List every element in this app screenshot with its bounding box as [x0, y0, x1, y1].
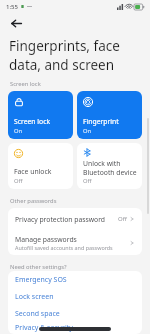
staticText: Off: [14, 177, 23, 185]
button[interactable]: Fingerprint unlock: [77, 91, 142, 139]
button[interactable]: Face unlock: [8, 143, 73, 189]
staticText: Unlock with: [83, 159, 121, 168]
staticText: 1:55: [6, 3, 18, 11]
staticText: On: [14, 127, 23, 135]
staticText: Manage passwords: [15, 235, 77, 244]
staticText: data, and screen lock: [9, 56, 134, 74]
button[interactable]: Privacy & security: [8, 322, 142, 334]
staticText: Off: [83, 177, 92, 185]
other: Open: [129, 240, 135, 246]
button[interactable]: Back: [6, 13, 26, 33]
staticText: Need other settings?: [10, 263, 67, 271]
staticText: Screen lock: [10, 80, 41, 88]
button[interactable]: Unlock with: [77, 143, 142, 189]
staticText: Second space: [15, 309, 60, 319]
staticText: Autofill saved accounts and passwords: [15, 244, 113, 251]
button[interactable]: Manage passwords: [8, 230, 142, 255]
staticText: Privacy protection password: [15, 215, 106, 224]
staticText: On: [83, 127, 92, 135]
button[interactable]: Emergency SOS: [8, 271, 142, 288]
other: Open: [129, 216, 135, 222]
staticText: Fingerprints, face: [9, 37, 120, 55]
staticText: Bluetooth device: [83, 168, 137, 177]
staticText: Fingerprint unlock: [83, 117, 139, 126]
button[interactable]: Screen lock: [8, 91, 73, 139]
staticText: Emergency SOS: [15, 275, 67, 285]
button[interactable]: Privacy protection password: [8, 208, 142, 230]
staticText: Other passwords: [10, 197, 57, 205]
button[interactable]: Second space: [8, 305, 142, 322]
staticText: Screen lock: [14, 117, 51, 126]
staticText: Lock screen: [15, 292, 54, 302]
staticText: Off: [118, 215, 127, 223]
button[interactable]: Lock screen: [8, 288, 142, 305]
staticText: Privacy & security: [15, 323, 73, 333]
staticText: Face unlock: [14, 167, 52, 176]
